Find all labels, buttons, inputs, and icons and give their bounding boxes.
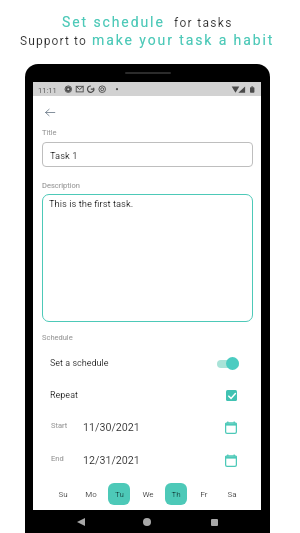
staticText: Schedule (42, 333, 73, 342)
button[interactable]: Mo (80, 483, 102, 505)
button[interactable]: Home (136, 511, 158, 533)
button[interactable]: End (33, 448, 261, 472)
staticText: 11/30/2021 (83, 421, 140, 434)
staticText: 12/31/2021 (83, 454, 140, 467)
staticText: Support to (20, 34, 92, 48)
button[interactable]: Navigate up (37, 100, 62, 125)
button[interactable]: Pick date (223, 452, 239, 468)
staticText: Start (51, 421, 68, 430)
button[interactable]: Th (165, 483, 187, 505)
staticText: End (51, 454, 64, 463)
button[interactable]: This is the first task. (42, 194, 253, 322)
button[interactable]: Set a schedule (33, 351, 261, 375)
staticText: for tasks (174, 16, 233, 30)
staticText: Su (58, 490, 68, 499)
staticText: Set a schedule (50, 358, 109, 369)
staticText: Th (171, 490, 181, 499)
staticText: Task 1 (50, 150, 78, 161)
staticText: Fr (200, 490, 208, 499)
staticText: Repeat (50, 390, 78, 401)
staticText: Set schedule (62, 14, 171, 30)
staticText: Tu (115, 490, 124, 499)
button[interactable]: Sa (221, 483, 243, 505)
button[interactable]: Recent apps (203, 511, 225, 533)
staticText: make your task a habit (92, 32, 275, 48)
button[interactable]: Fr (193, 483, 215, 505)
button[interactable]: Task 1 (42, 142, 253, 167)
button[interactable]: Su (52, 483, 74, 505)
button[interactable]: Back (70, 511, 92, 533)
button[interactable]: Start (33, 415, 261, 439)
button[interactable]: Repeat (33, 383, 261, 407)
staticText: Description (42, 181, 80, 190)
staticText: This is the first task. (49, 198, 134, 209)
staticText: 11:11 (38, 86, 57, 95)
staticText: We (142, 490, 154, 499)
staticText: Title (42, 128, 57, 137)
button[interactable]: We (137, 483, 159, 505)
staticText: Mo (85, 490, 97, 499)
staticText: Sa (227, 490, 237, 499)
button[interactable]: Pick date (223, 419, 239, 435)
button[interactable]: Tu (108, 483, 130, 505)
